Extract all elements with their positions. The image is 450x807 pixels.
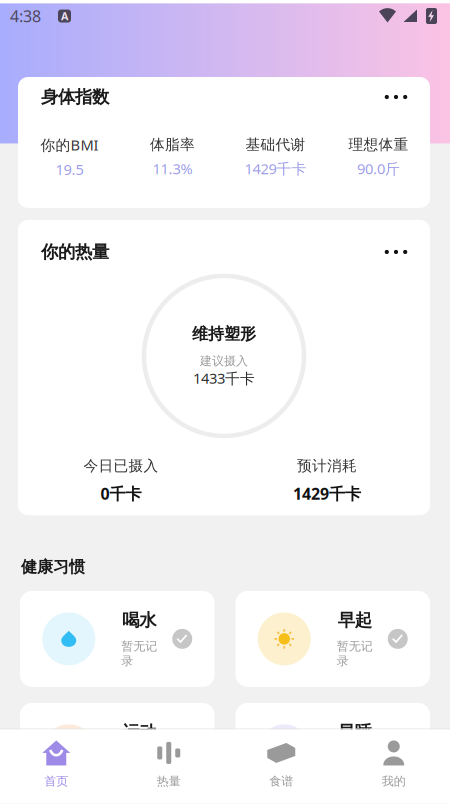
button[interactable]: 运动: [20, 703, 214, 799]
staticText: 19.5: [55, 159, 83, 179]
button[interactable]: 我的: [337, 729, 450, 804]
staticText: 维持塑形: [192, 324, 256, 344]
staticText: 90.0斤: [357, 159, 400, 178]
staticText: 建议摄入: [200, 354, 248, 368]
button[interactable]: 喝水: [20, 591, 214, 687]
staticText: 食谱: [269, 774, 293, 789]
staticText: 4:38: [10, 5, 41, 27]
staticText: 基础代谢: [245, 136, 305, 154]
staticText: 暂无记录: [337, 639, 373, 668]
staticText: 体脂率: [150, 136, 195, 154]
staticText: A: [61, 9, 68, 23]
staticText: 你的BMI: [40, 135, 98, 154]
staticText: 0千卡: [100, 483, 141, 504]
staticText: 热量: [157, 774, 181, 789]
staticText: 首页: [44, 774, 68, 789]
button[interactable]: 早起: [235, 591, 430, 687]
staticText: 预计消耗: [297, 457, 357, 475]
button[interactable]: 食谱: [225, 729, 337, 804]
staticText: 运动: [122, 721, 156, 743]
staticText: 喝水: [122, 609, 156, 631]
staticText: 1433千卡: [193, 368, 255, 388]
staticText: 1429千卡: [293, 483, 361, 504]
button[interactable]: 早睡: [235, 703, 430, 799]
staticText: 1429千卡: [244, 159, 306, 178]
staticText: 我的: [382, 774, 406, 789]
staticText: 今日已摄入: [83, 457, 158, 475]
staticText: 你的热量: [41, 241, 109, 263]
button[interactable]: 热量: [112, 729, 225, 804]
staticText: 暂无记录: [121, 639, 157, 668]
staticText: 健康习惯: [21, 557, 85, 577]
button[interactable]: 首页: [0, 729, 112, 804]
staticText: 理想体重: [348, 136, 408, 154]
button[interactable]: More options: [370, 234, 422, 270]
staticText: 身体指数: [41, 86, 109, 108]
button[interactable]: More options: [370, 79, 422, 115]
staticText: 11.3%: [152, 159, 192, 178]
staticText: 早睡: [338, 721, 372, 743]
staticText: 早起: [338, 609, 372, 631]
